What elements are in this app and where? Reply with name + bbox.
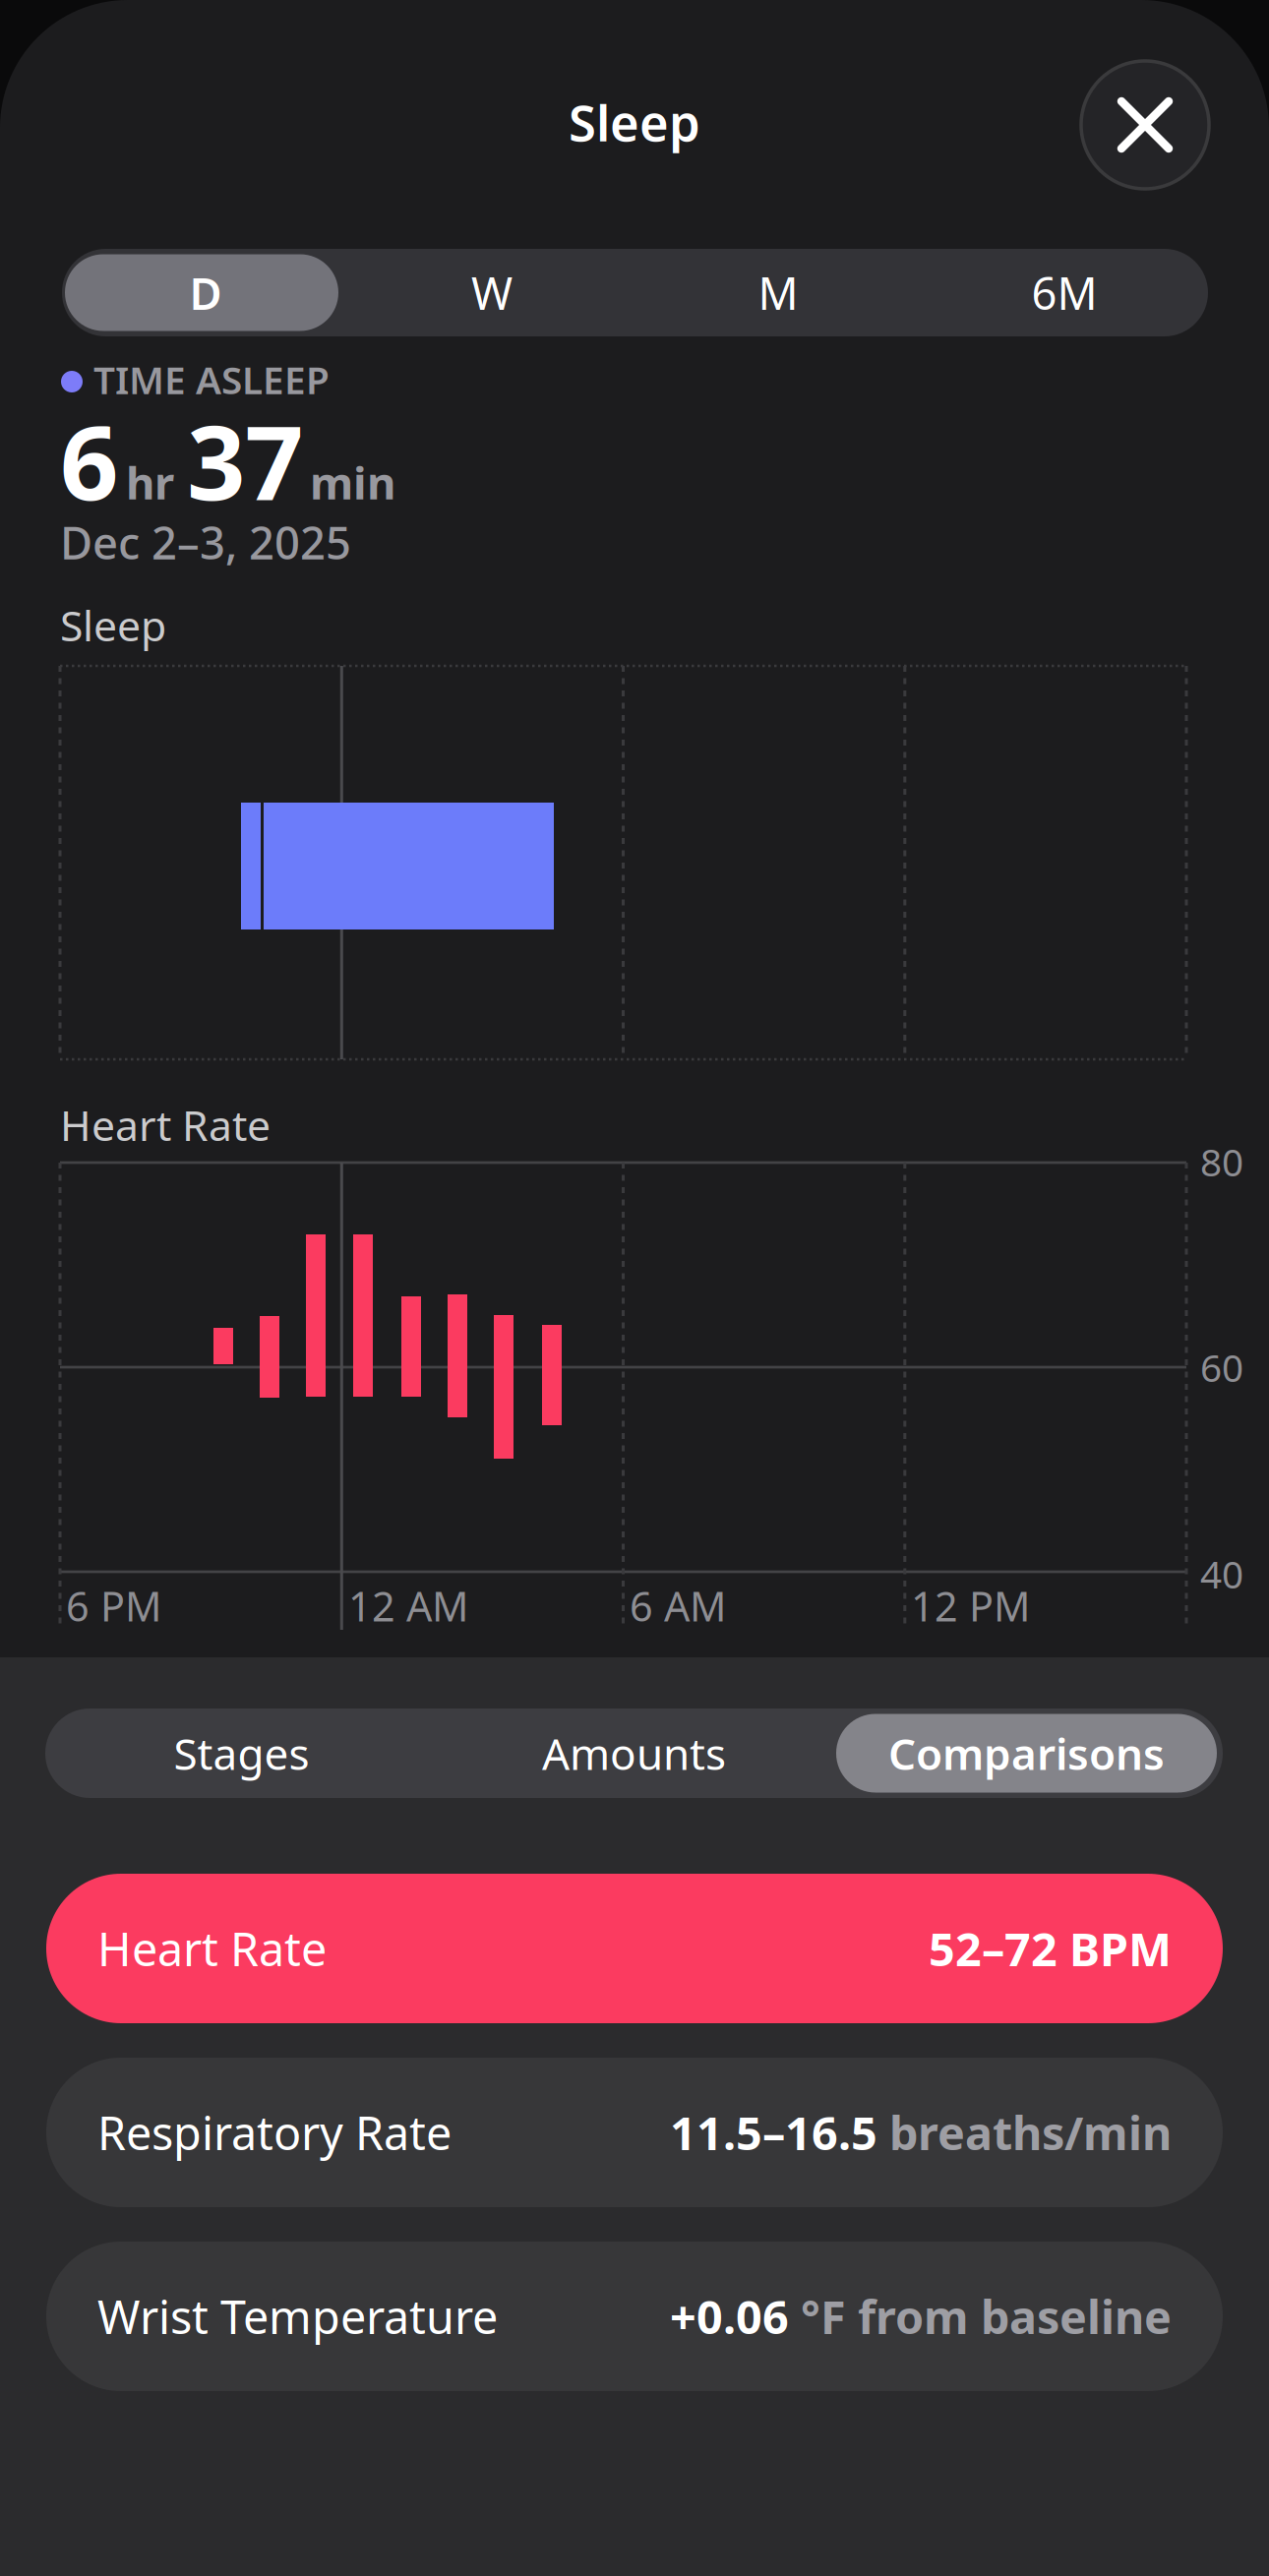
staticText: Wrist Temperature [97,2286,498,2347]
staticText: D [189,263,222,322]
button[interactable]: Wrist Temperature [46,2242,1223,2391]
staticText: 80 [1200,1136,1243,1187]
staticText: 40 [1200,1548,1243,1599]
button[interactable]: Amounts [438,1708,830,1798]
staticText: 60 [1200,1342,1243,1392]
staticText: 52–72 BPM [929,1918,1172,1979]
button[interactable]: Heart Rate [46,1874,1223,2023]
staticText: min [310,452,395,512]
button[interactable]: Close [1081,61,1209,189]
button[interactable]: M [635,249,921,336]
staticText: Sleep [569,89,700,155]
button[interactable]: Stages [45,1708,438,1798]
staticText: M [758,263,798,322]
staticText: Stages [174,1725,309,1782]
staticText: 6 [60,392,118,528]
staticText: 12 AM [348,1579,468,1633]
staticText: breaths/min [877,2102,1172,2163]
staticText: Heart Rate [60,1097,271,1152]
staticText: Heart Rate [97,1918,327,1979]
button[interactable]: Respiratory Rate [46,2058,1223,2207]
staticText: TIME ASLEEP [93,354,330,405]
staticText: 12 PM [911,1579,1030,1633]
staticText: Amounts [542,1725,726,1782]
staticText: 6M [1031,263,1097,322]
button[interactable]: D [62,249,349,336]
staticText: hr [126,452,174,512]
staticText: 11.5–16.5 [670,2102,877,2163]
staticText: Sleep [60,597,166,653]
staticText: Respiratory Rate [97,2102,452,2163]
button[interactable]: W [349,249,635,336]
staticText: Comparisons [888,1725,1165,1782]
staticText: +0.06 [670,2286,789,2347]
staticText: 37 [187,392,303,528]
staticText: 6 PM [66,1579,161,1633]
button[interactable]: Comparisons [830,1708,1223,1798]
button[interactable]: 6M [921,249,1208,336]
staticText: °F from baseline [789,2286,1172,2347]
staticText: W [471,263,513,322]
staticText: Dec 2–3, 2025 [60,512,351,572]
staticText: 6 AM [630,1579,726,1633]
